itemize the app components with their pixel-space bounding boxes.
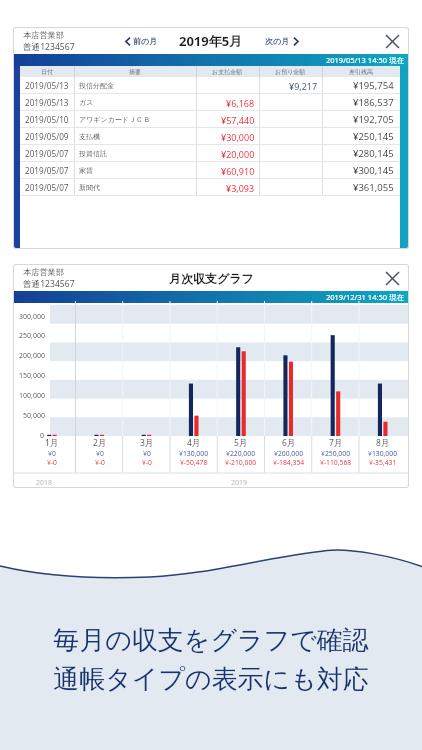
- button[interactable]: 2019/05/07: [20, 145, 400, 162]
- staticText: 2019/05/13: [25, 80, 69, 91]
- staticText: ¥-110,568: [320, 458, 352, 467]
- staticText: ガス: [79, 98, 94, 107]
- staticText: 50,000: [23, 411, 45, 421]
- staticText: ¥300,145: [353, 164, 394, 177]
- staticText: 1月: [45, 437, 59, 449]
- staticText: ¥192,705: [353, 113, 394, 126]
- staticText: お支払金額: [212, 68, 243, 76]
- staticText: 200,000: [19, 351, 45, 361]
- staticText: 支払機: [79, 132, 100, 141]
- staticText: 摘要: [129, 68, 141, 76]
- staticText: ¥361,055: [353, 181, 394, 194]
- staticText: ¥186,537: [353, 96, 394, 109]
- staticText: 0: [40, 431, 45, 441]
- staticText: ¥-184,354: [273, 458, 305, 467]
- staticText: 次の月: [265, 36, 290, 46]
- staticText: ¥0: [96, 449, 104, 458]
- staticText: 250,000: [19, 331, 45, 341]
- button[interactable]: 閉じる: [381, 267, 403, 289]
- staticText: 日付: [41, 68, 53, 76]
- staticText: ¥250,000: [321, 449, 351, 458]
- staticText: 本店営業部: [23, 267, 64, 277]
- staticText: 2018: [36, 478, 53, 487]
- staticText: 2019/05/13: [25, 97, 69, 108]
- staticText: ¥-0: [142, 458, 152, 467]
- staticText: 2019/05/07: [25, 165, 69, 176]
- button[interactable]: 2019/05/13: [20, 94, 400, 111]
- staticText: 普通1234567: [23, 41, 75, 53]
- staticText: 家賃: [79, 166, 93, 175]
- staticText: ¥-210,000: [225, 458, 257, 467]
- staticText: ¥130,000: [368, 449, 398, 458]
- staticText: お預り金額: [275, 68, 306, 76]
- staticText: ¥9,217: [289, 80, 318, 92]
- button[interactable]: 次の月: [261, 31, 302, 51]
- staticText: 7月: [329, 437, 343, 449]
- staticText: 本店営業部: [23, 30, 64, 40]
- staticText: 差引残高: [349, 68, 373, 76]
- button[interactable]: 2019/05/07: [20, 162, 400, 179]
- staticText: 5月: [234, 437, 248, 449]
- staticText: ¥280,145: [353, 147, 394, 160]
- staticText: ¥130,000: [179, 449, 209, 458]
- staticText: 普通1234567: [23, 278, 75, 290]
- button[interactable]: 2019/05/07: [20, 179, 400, 196]
- staticText: 2019年5月: [179, 32, 243, 50]
- staticText: ¥-35,431: [369, 458, 397, 467]
- staticText: 8月: [376, 437, 390, 449]
- staticText: 新聞代: [79, 183, 100, 192]
- staticText: ¥30,000: [221, 131, 255, 143]
- staticText: ¥-50,478: [180, 458, 208, 467]
- staticText: ¥0: [48, 449, 56, 458]
- staticText: ¥220,000: [226, 449, 256, 458]
- staticText: ¥250,145: [353, 130, 394, 143]
- staticText: ¥200,000: [274, 449, 304, 458]
- staticText: 2019/05/07: [25, 148, 69, 159]
- staticText: 2019/05/09: [25, 131, 69, 142]
- staticText: ¥6,168: [226, 97, 255, 109]
- staticText: ¥-0: [95, 458, 105, 467]
- staticText: 2019/05/10: [25, 114, 69, 125]
- button[interactable]: 2019/05/09: [20, 128, 400, 145]
- staticText: 3月: [140, 437, 154, 449]
- staticText: ¥20,000: [221, 148, 255, 160]
- staticText: ¥195,754: [353, 79, 394, 92]
- staticText: 100,000: [19, 391, 45, 401]
- button[interactable]: 前の月: [121, 31, 162, 51]
- staticText: 毎月の収支をグラフで確認: [53, 624, 369, 657]
- staticText: 2019/05/13 14:50 現在: [326, 55, 404, 65]
- staticText: 月次収支グラフ: [169, 271, 254, 286]
- staticText: ¥-0: [47, 458, 57, 467]
- staticText: アワギンカードＪＣＢ: [79, 115, 150, 124]
- button[interactable]: 2019/05/13: [20, 77, 400, 94]
- staticText: ¥0: [143, 449, 151, 458]
- staticText: 150,000: [19, 371, 45, 381]
- button[interactable]: 2019/05/10: [20, 111, 400, 128]
- staticText: 2019/05/07: [25, 182, 69, 193]
- staticText: 前の月: [133, 36, 158, 46]
- staticText: ¥3,093: [226, 182, 255, 194]
- staticText: 300,000: [19, 312, 45, 322]
- staticText: 6月: [282, 437, 296, 449]
- staticText: ¥60,910: [221, 165, 255, 177]
- staticText: 投資信託: [79, 149, 107, 158]
- button[interactable]: 閉じる: [381, 30, 403, 52]
- staticText: 2月: [93, 437, 107, 449]
- staticText: 2019: [231, 478, 248, 487]
- staticText: 投信分配金: [79, 81, 114, 90]
- staticText: 通帳タイプの表示にも対応: [53, 663, 369, 696]
- staticText: ¥57,440: [221, 114, 255, 126]
- staticText: 2019/12/31 14:50 現在: [326, 292, 404, 302]
- staticText: 4月: [187, 437, 201, 449]
